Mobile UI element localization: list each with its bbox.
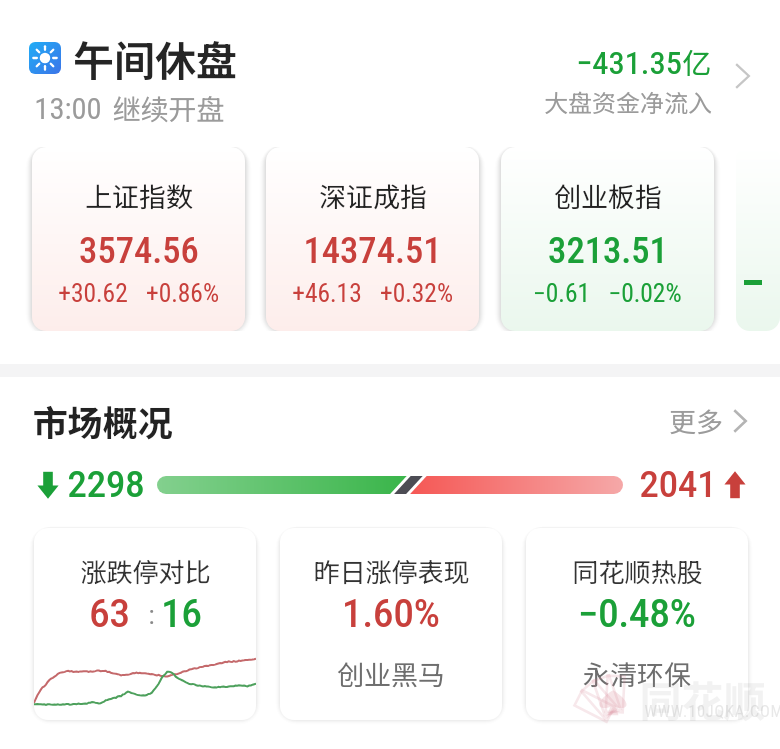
staticText: 更多 xyxy=(669,401,723,440)
staticText: 创业黑马 xyxy=(337,654,445,693)
button[interactable]: 涨跌停对比 xyxy=(34,528,256,720)
staticText: 深证成指 xyxy=(319,176,427,215)
staticText: −0.48% xyxy=(578,592,696,637)
staticText: +30.62 xyxy=(58,279,128,308)
staticText: 大盘资金净流入 xyxy=(544,84,712,119)
staticText: −431.35 xyxy=(576,44,682,82)
staticText: 永清环保 xyxy=(583,654,691,693)
button[interactable] xyxy=(736,147,780,331)
button[interactable]: 上证指数 xyxy=(32,147,245,331)
staticText: 1.60% xyxy=(342,592,440,637)
staticText: 16 xyxy=(161,592,202,637)
staticText: 63 xyxy=(89,592,130,637)
staticText: 13:00 xyxy=(34,91,102,126)
staticText: 同花顺 xyxy=(639,668,766,729)
staticText: : xyxy=(130,600,161,630)
other: Midday break xyxy=(29,42,61,74)
staticText: +0.32% xyxy=(380,279,453,308)
staticText: 亿 xyxy=(682,40,712,82)
button[interactable]: 创业板指 xyxy=(501,147,714,331)
button[interactable]: 昨日涨停表现 xyxy=(280,528,502,720)
button[interactable]: 同花顺热股 xyxy=(526,528,748,720)
button[interactable]: 更多 xyxy=(669,401,747,440)
other: Declining count xyxy=(36,470,60,500)
staticText: 3213.51 xyxy=(548,230,668,272)
staticText: −0.61 xyxy=(533,279,590,308)
staticText: 同花顺热股 xyxy=(572,552,703,590)
other: Advancing count xyxy=(723,470,747,500)
button[interactable]: Midday break xyxy=(0,0,780,134)
staticText: 昨日涨停表现 xyxy=(313,552,470,590)
staticText: 上证指数 xyxy=(85,176,193,215)
staticText: −0.02% xyxy=(608,279,682,308)
other: Market fund flow details xyxy=(735,63,750,89)
staticText: 14374.51 xyxy=(303,230,442,272)
staticText: +46.13 xyxy=(292,279,362,308)
staticText: 继续开盘 xyxy=(112,88,225,129)
staticText: 涨跌停对比 xyxy=(80,552,211,590)
staticText: +0.86% xyxy=(146,279,219,308)
staticText: WWW.10JQKA.COM.CN xyxy=(644,702,780,721)
staticText: 午间休盘 xyxy=(73,28,237,87)
staticText: 2041 xyxy=(639,464,717,506)
staticText: 2298 xyxy=(67,464,145,506)
staticText: 市场概况 xyxy=(32,395,173,446)
staticText: 创业板指 xyxy=(554,176,662,215)
staticText: 3574.56 xyxy=(79,230,199,272)
button[interactable]: 深证成指 xyxy=(266,147,479,331)
